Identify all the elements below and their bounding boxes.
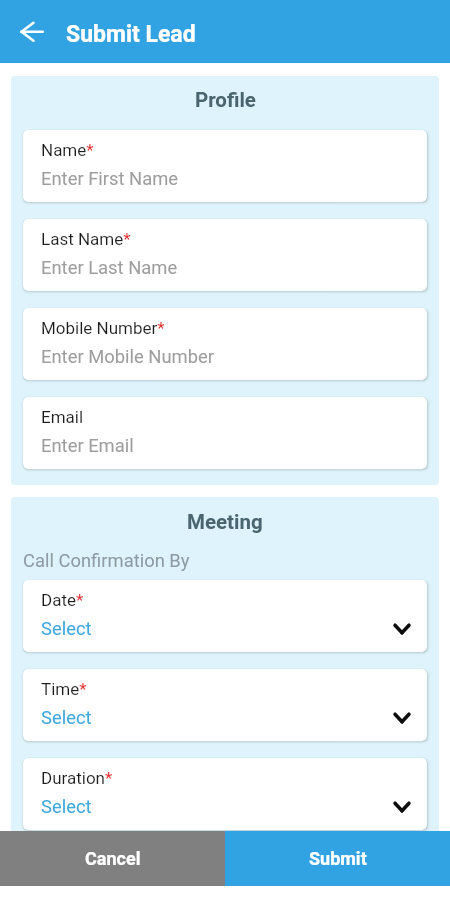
staticText: Call Confirmation By (23, 550, 190, 572)
staticText: Time* (41, 679, 87, 699)
staticText: Email (41, 407, 84, 427)
staticText: Meeting (187, 510, 263, 534)
staticText: Select (41, 796, 92, 818)
staticText: Name* (41, 140, 94, 160)
staticText: Submit (309, 848, 367, 869)
staticText: Profile (195, 88, 256, 112)
staticText: Enter Last Name (41, 257, 178, 279)
button[interactable]: Back (14, 14, 50, 50)
staticText: Select (41, 707, 92, 729)
button[interactable]: Duration* (23, 758, 427, 830)
button[interactable]: Cancel (0, 831, 225, 886)
button[interactable]: Name* (23, 130, 427, 202)
button[interactable]: Mobile Number* (23, 308, 427, 380)
staticText: Enter Email (41, 435, 134, 457)
staticText: Mobile Number* (41, 318, 165, 338)
staticText: Date* (41, 590, 84, 610)
button[interactable]: Time* (23, 669, 427, 741)
button[interactable]: Email (23, 397, 427, 469)
staticText: Submit Lead (66, 21, 196, 48)
staticText: Enter Mobile Number (41, 346, 214, 368)
staticText: Last Name* (41, 229, 131, 249)
button[interactable]: Date* (23, 580, 427, 652)
button[interactable]: Submit (225, 831, 450, 886)
staticText: Enter First Name (41, 168, 179, 190)
staticText: Cancel (85, 848, 141, 869)
staticText: Select (41, 618, 92, 640)
staticText: Duration* (41, 768, 113, 788)
button[interactable]: Last Name* (23, 219, 427, 291)
